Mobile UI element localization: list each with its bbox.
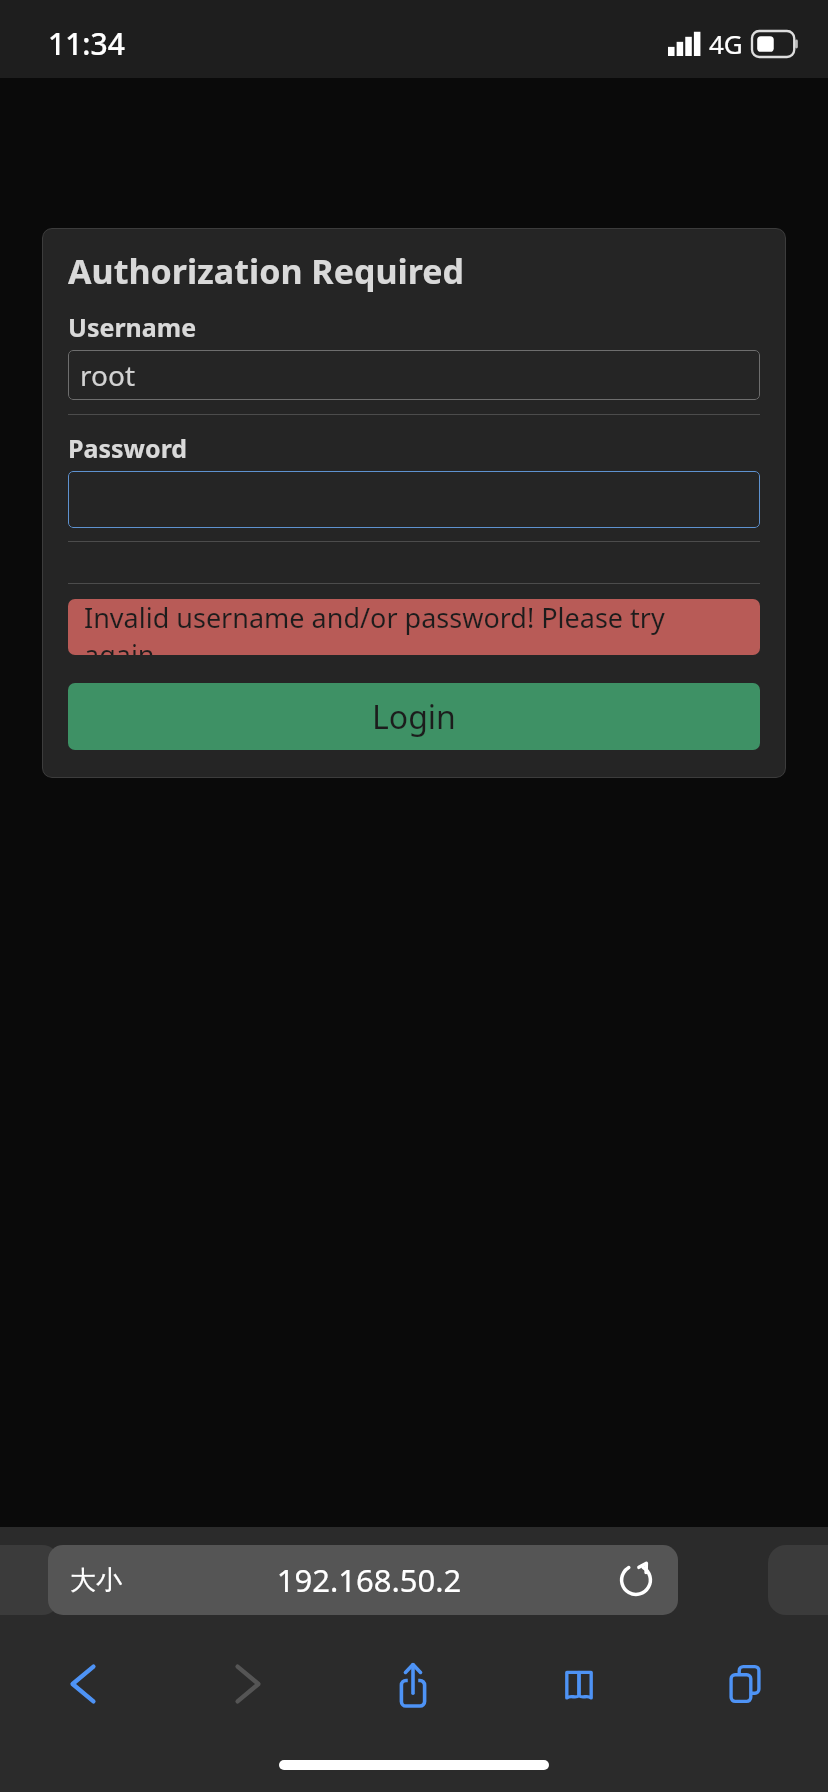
staticText: Invalid username and/or password! Please… <box>84 599 744 655</box>
staticText: 大小 <box>70 1564 122 1597</box>
button[interactable]: Bookmarks <box>496 1639 662 1729</box>
staticText: Username <box>68 310 197 344</box>
staticText: 192.168.50.2 <box>122 1559 616 1601</box>
button[interactable]: 大小 <box>48 1545 678 1615</box>
staticText: Authorization Required <box>68 248 464 294</box>
button[interactable]: Forward <box>165 1639 330 1729</box>
button[interactable]: Login <box>68 683 760 750</box>
button[interactable]: root <box>68 350 760 400</box>
staticText: 11:34 <box>48 23 125 64</box>
button[interactable] <box>68 471 760 528</box>
staticText: 4G <box>709 26 743 61</box>
button[interactable]: Share <box>330 1639 496 1729</box>
button[interactable]: Back <box>0 1639 165 1729</box>
staticText: Password <box>68 431 188 465</box>
staticText: root <box>80 356 135 394</box>
staticText: Login <box>372 695 456 739</box>
button[interactable]: Tabs <box>662 1639 828 1729</box>
button[interactable]: Reload <box>616 1560 656 1600</box>
